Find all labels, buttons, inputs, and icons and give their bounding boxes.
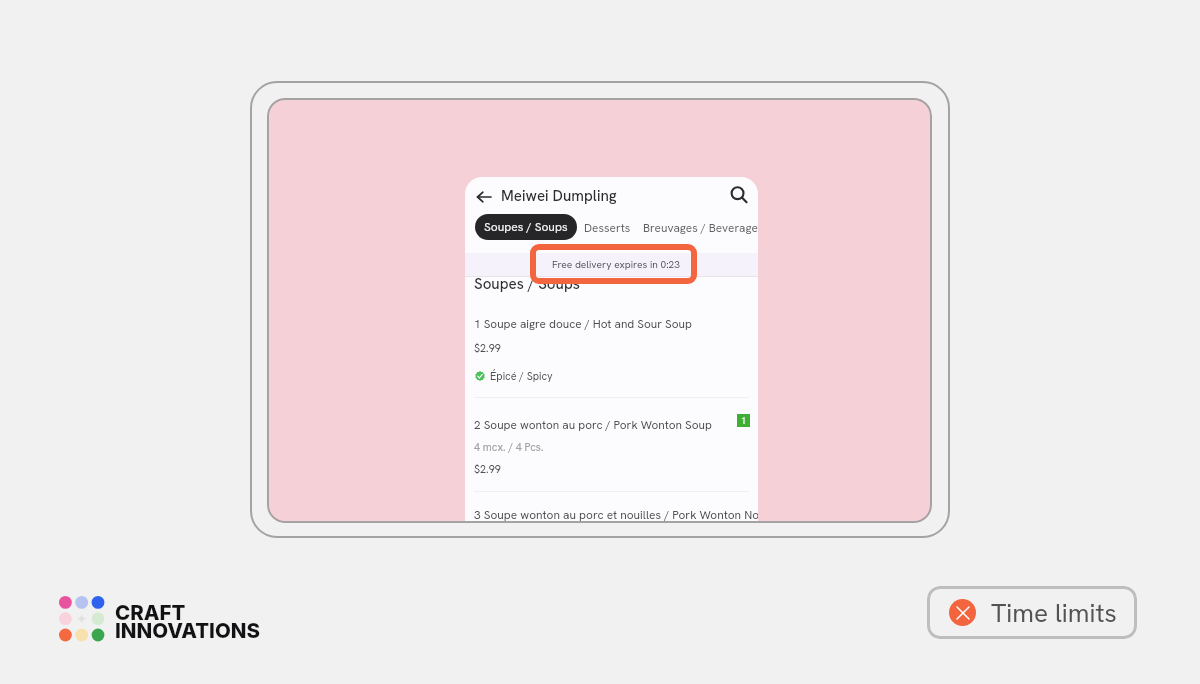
staticText: $2.99: [474, 462, 501, 476]
staticText: Soupes / Soups: [484, 219, 568, 235]
button[interactable]: Back: [472, 185, 496, 209]
button[interactable]: Breuvages / Beverages: [637, 214, 758, 240]
staticText: Breuvages / Beverages: [643, 220, 758, 235]
staticText: Meiwei Dumpling: [501, 186, 617, 206]
staticText: 2 Soupe wonton au porc / Pork Wonton Sou…: [474, 417, 712, 432]
staticText: 4 mcx. / 4 Pcs.: [474, 440, 544, 454]
staticText: Épicé / Spicy: [490, 369, 553, 383]
staticText: 1 Soupe aigre douce / Hot and Sour Soup: [474, 316, 692, 331]
staticText: Time limits: [991, 596, 1117, 630]
button[interactable]: Desserts: [578, 214, 637, 240]
button[interactable]: Time limits: [927, 586, 1137, 639]
button[interactable]: Soupes / Soups: [475, 214, 577, 240]
button[interactable]: 2 Soupe wonton au porc / Pork Wonton Sou…: [465, 398, 758, 491]
button[interactable]: 3 Soupe wonton au porc et nouilles / Por…: [465, 492, 758, 523]
button[interactable]: Search: [726, 182, 752, 208]
staticText: INNOVATIONS: [115, 618, 261, 643]
staticText: CRAFT: [115, 600, 186, 625]
staticText: 3 Soupe wonton au porc et nouilles / Por…: [474, 507, 758, 523]
staticText: 1: [741, 415, 747, 427]
button[interactable]: 1 Soupe aigre douce / Hot and Sour Soup: [465, 297, 758, 397]
staticText: $2.99: [474, 341, 501, 355]
staticText: Desserts: [584, 220, 631, 235]
staticText: Soupes / Soups: [474, 274, 580, 294]
staticText: Free delivery expires in 0:23: [552, 258, 680, 271]
